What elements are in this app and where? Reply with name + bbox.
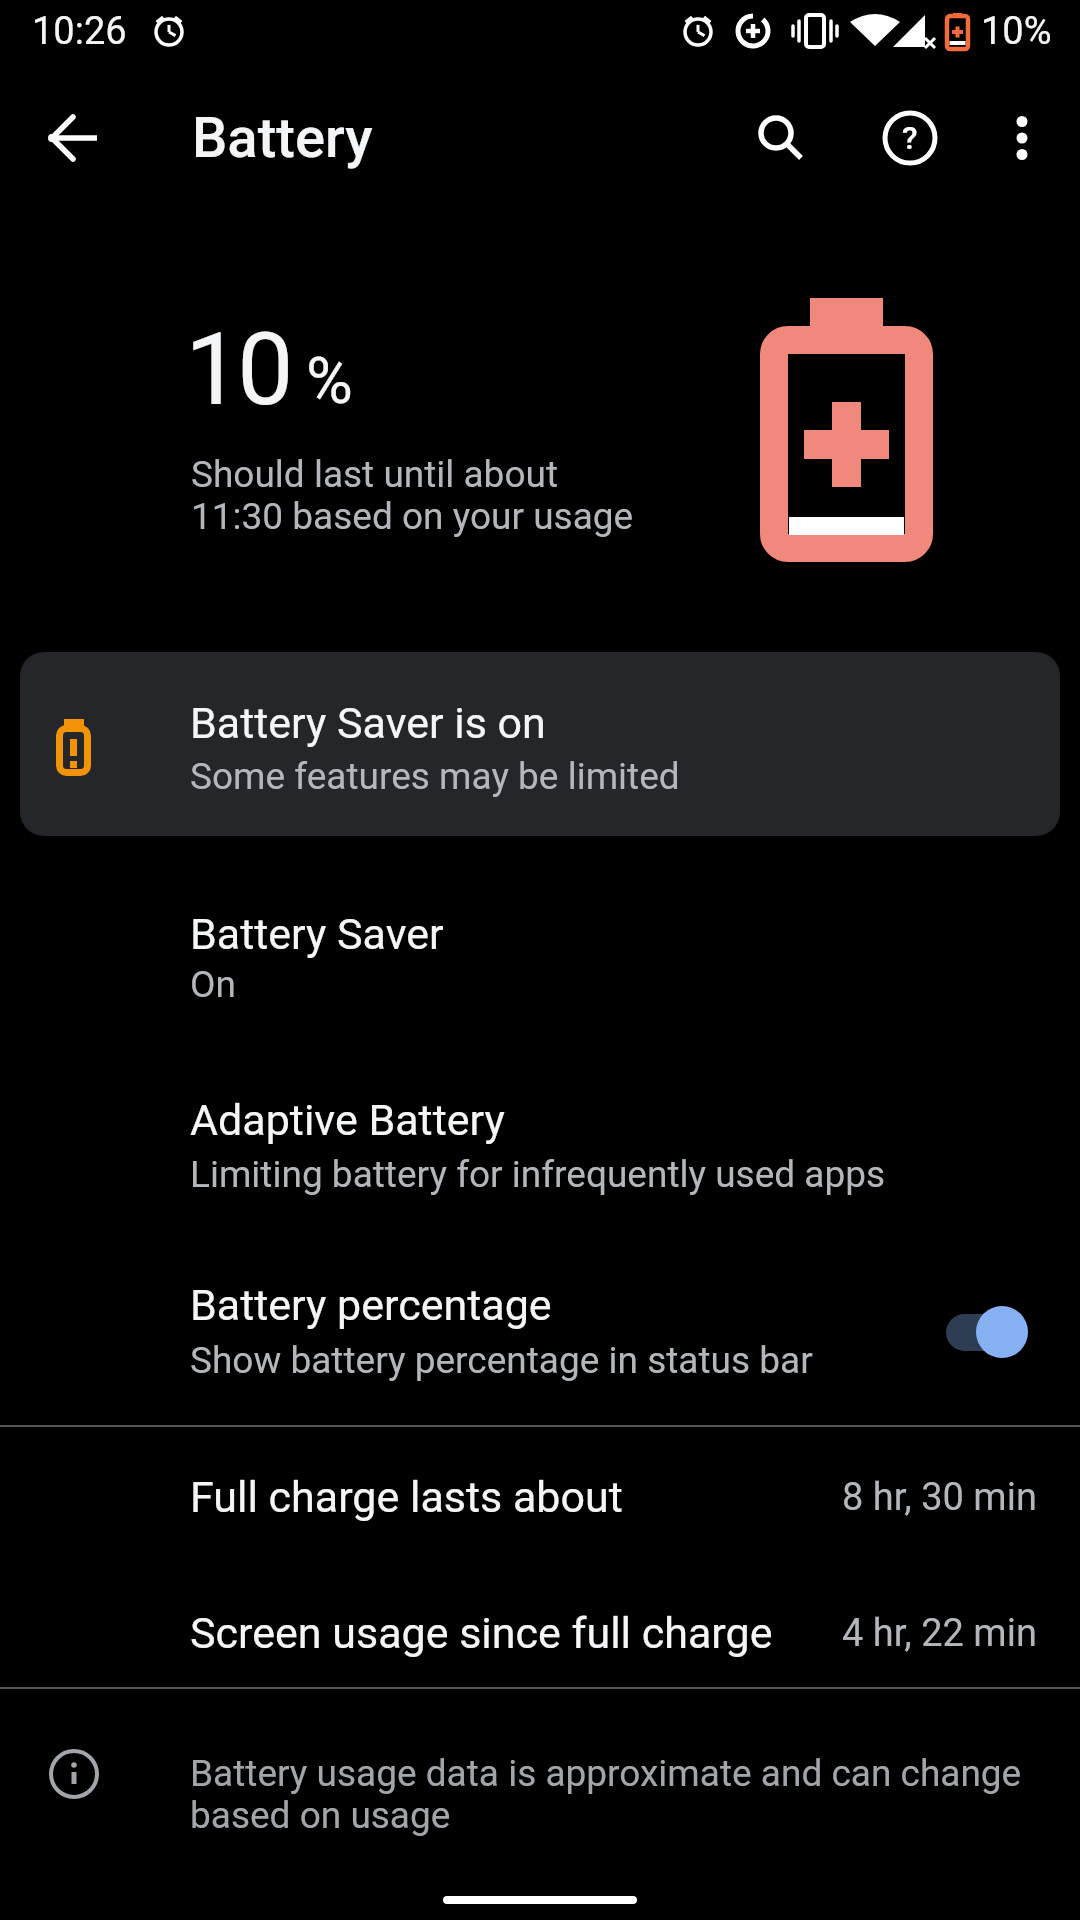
staticText: Battery <box>192 105 373 171</box>
button[interactable] <box>977 93 1067 183</box>
button[interactable] <box>0 1569 1080 1699</box>
button[interactable] <box>736 93 826 183</box>
staticText: Should last until about 11:30 based on y… <box>191 453 634 538</box>
staticText: 10% <box>981 9 1052 54</box>
staticText: ? <box>902 119 918 157</box>
button[interactable] <box>0 1056 1080 1186</box>
staticText: Battery Saver is on <box>190 698 546 748</box>
staticText: Full charge lasts about <box>190 1472 623 1522</box>
staticText: 8 hr, 30 min <box>842 1475 1037 1520</box>
button[interactable] <box>20 652 1060 836</box>
staticText: Battery usage data is approximate and ca… <box>190 1752 1022 1837</box>
staticText: Some features may be limited <box>190 755 680 798</box>
staticText: Show battery percentage in status bar <box>190 1339 813 1382</box>
staticText: Limiting battery for infrequently used a… <box>190 1153 886 1196</box>
staticText: 10 <box>185 311 290 428</box>
staticText: Battery Saver <box>190 909 444 959</box>
button[interactable] <box>0 870 1080 1000</box>
button[interactable]: ? <box>865 93 955 183</box>
staticText: % <box>306 344 353 419</box>
staticText: Battery percentage <box>190 1280 552 1330</box>
staticText: Screen usage since full charge <box>190 1608 773 1658</box>
button[interactable] <box>30 93 120 183</box>
staticText: On <box>190 963 236 1006</box>
button[interactable] <box>0 1242 1080 1372</box>
staticText: 4 hr, 22 min <box>842 1611 1037 1656</box>
staticText: 10:26 <box>32 9 127 54</box>
button[interactable] <box>0 1433 1080 1563</box>
staticText: Adaptive Battery <box>190 1095 505 1145</box>
